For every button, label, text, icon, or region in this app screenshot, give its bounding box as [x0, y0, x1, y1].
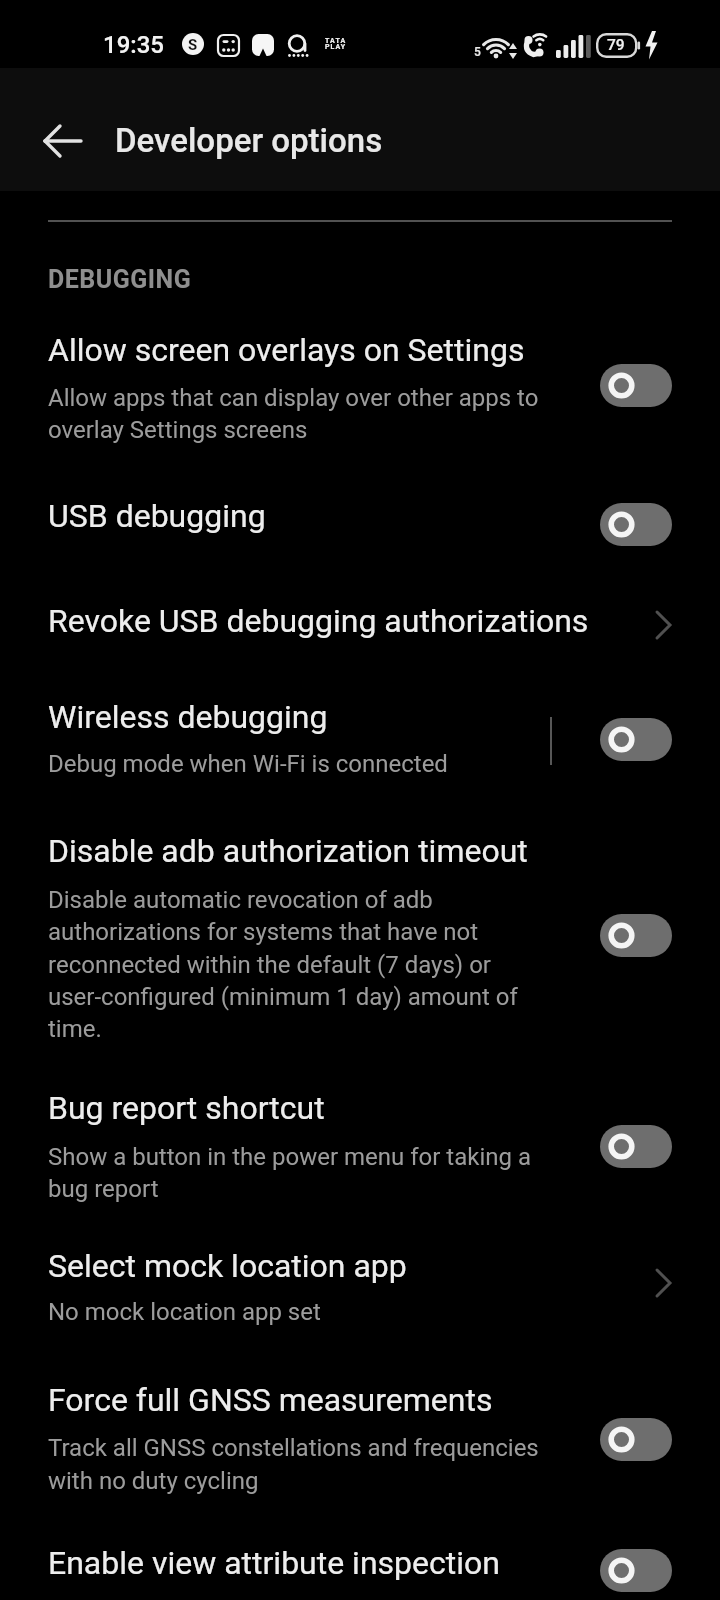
staticText: DEBUGGING	[48, 265, 192, 294]
staticText: Enable view attribute inspection	[48, 1544, 500, 1582]
staticText: time.	[48, 1015, 102, 1043]
staticText: Force full GNSS measurements	[48, 1381, 493, 1419]
staticText: 19:35	[103, 31, 164, 59]
staticText: Bug report shortcut	[48, 1089, 325, 1127]
button[interactable]: Select mock location app	[0, 1218, 720, 1340]
staticText: USB debugging	[48, 497, 266, 535]
staticText: PLAY	[325, 43, 347, 51]
button[interactable]	[600, 914, 672, 957]
staticText: Allow screen overlays on Settings	[48, 331, 525, 369]
staticText: Wireless debugging	[48, 698, 328, 736]
staticText: Allow apps that can display over other a…	[48, 384, 539, 412]
staticText: Select mock location app	[48, 1247, 407, 1285]
staticText: bug report	[48, 1175, 159, 1203]
staticText: user-configured (minimum 1 day) amount o…	[48, 983, 518, 1011]
staticText: Revoke USB debugging authorizations	[48, 602, 589, 640]
staticText: Show a button in the power menu for taki…	[48, 1143, 531, 1171]
button[interactable]: Disable adb authorization timeout	[0, 800, 720, 1052]
button[interactable]: USB debugging	[0, 468, 720, 563]
button[interactable]	[600, 503, 672, 546]
staticText: TATA	[325, 37, 347, 45]
button[interactable]: Wireless debugging	[0, 668, 720, 790]
button[interactable]	[33, 111, 93, 171]
staticText: Developer options	[115, 121, 383, 160]
button[interactable]	[600, 1549, 672, 1592]
staticText: Debug mode when Wi-Fi is connected	[48, 750, 448, 778]
staticText: with no duty cycling	[48, 1467, 259, 1495]
button[interactable]: Revoke USB debugging authorizations	[0, 572, 720, 664]
button[interactable]: Allow screen overlays on Settings	[0, 300, 720, 460]
staticText: Track all GNSS constellations and freque…	[48, 1434, 539, 1462]
staticText: overlay Settings screens	[48, 416, 308, 444]
staticText: 5	[474, 45, 481, 59]
staticText: 79	[607, 36, 625, 54]
button[interactable]: Force full GNSS measurements	[0, 1348, 720, 1503]
staticText: Disable adb authorization timeout	[48, 832, 528, 870]
button[interactable]: Bug report shortcut	[0, 1058, 720, 1210]
staticText: reconnected within the default (7 days) …	[48, 951, 491, 979]
staticText: S	[188, 36, 198, 54]
staticText: Disable automatic revocation of adb	[48, 886, 433, 914]
button[interactable]	[600, 718, 672, 761]
button[interactable]	[600, 1418, 672, 1461]
staticText: No mock location app set	[48, 1298, 321, 1326]
staticText: authorizations for systems that have not	[48, 918, 479, 946]
button[interactable]	[600, 364, 672, 407]
button[interactable]: Enable view attribute inspection	[0, 1512, 720, 1600]
button[interactable]	[600, 1125, 672, 1168]
